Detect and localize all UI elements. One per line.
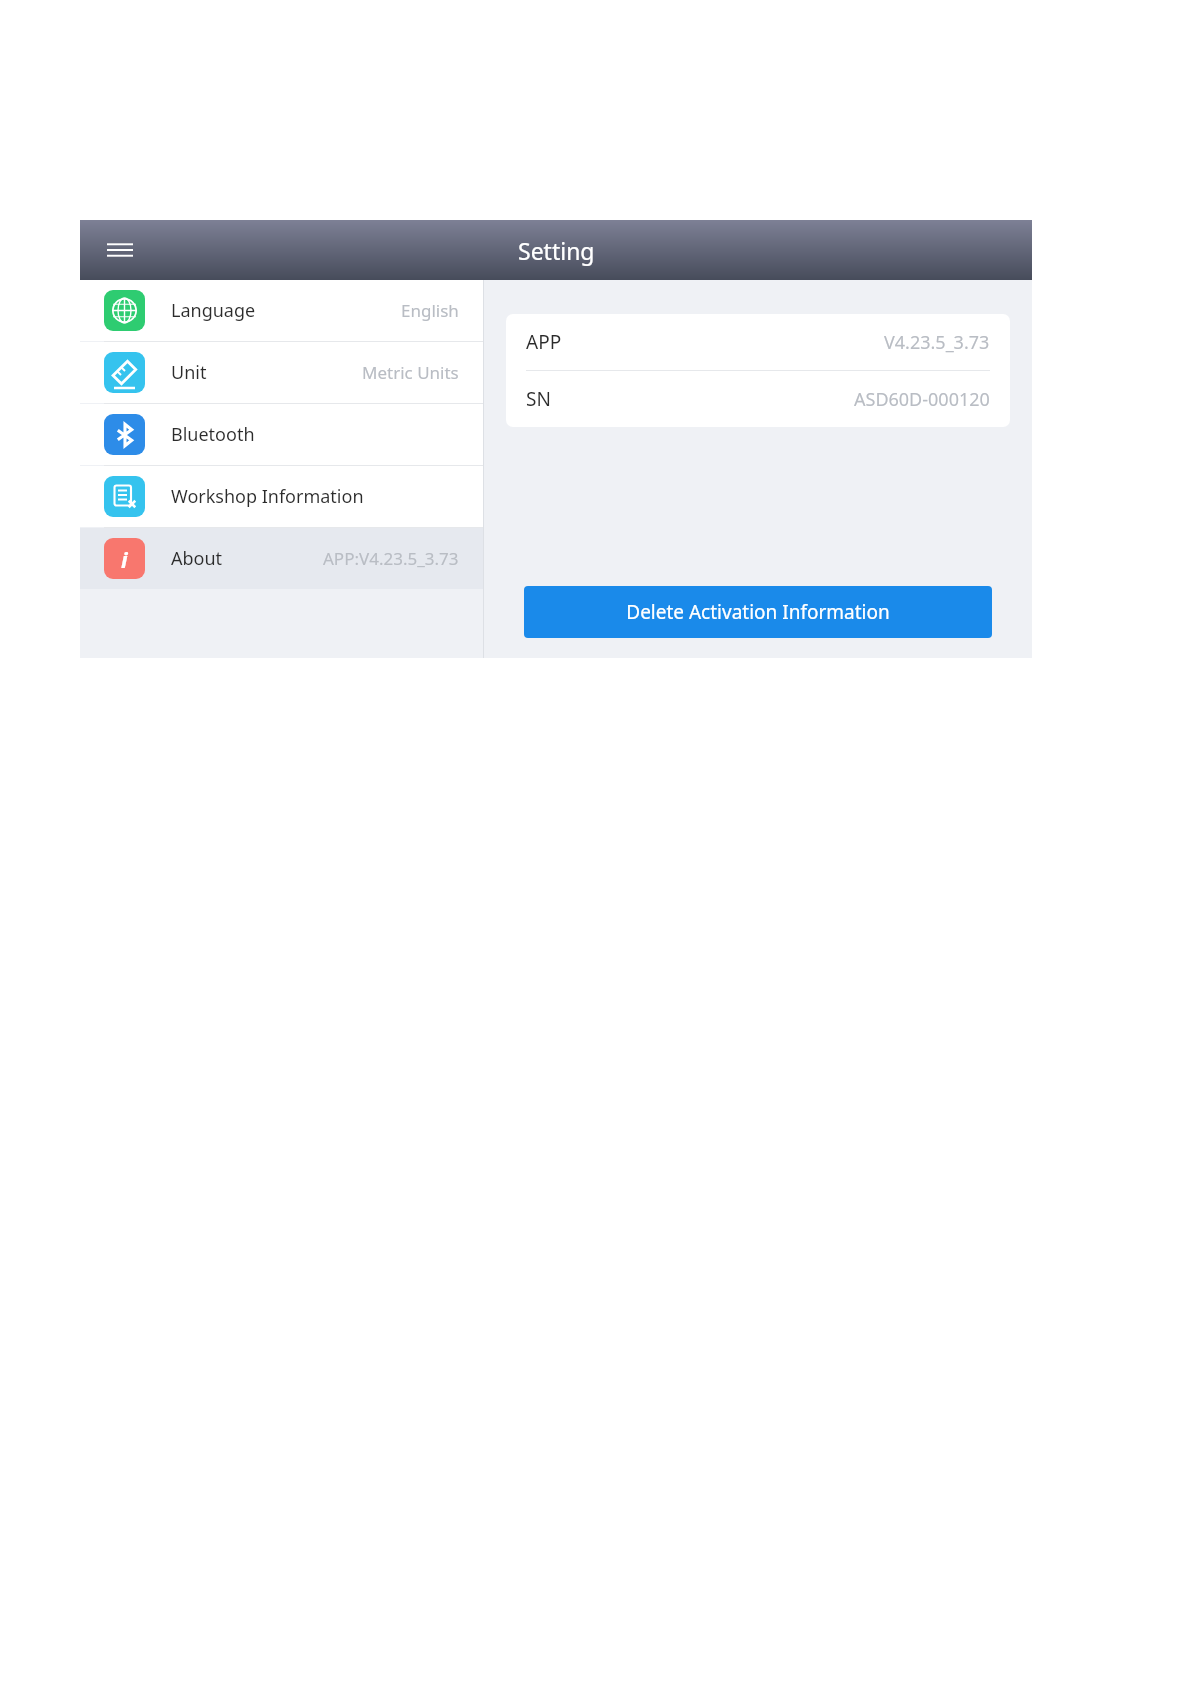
staticText: APP bbox=[526, 329, 562, 355]
button[interactable]: Language bbox=[80, 280, 483, 341]
staticText: Delete Activation Information bbox=[626, 599, 890, 625]
staticText: About bbox=[171, 546, 223, 571]
button[interactable]: SN bbox=[506, 371, 1010, 427]
staticText: ASD60D-000120 bbox=[854, 387, 990, 412]
button[interactable]: Menu bbox=[98, 228, 142, 272]
button[interactable]: Bluetooth bbox=[80, 404, 483, 465]
staticText: SN bbox=[526, 386, 551, 412]
button[interactable]: APP bbox=[506, 314, 1010, 370]
staticText: V4.23.5_3.73 bbox=[884, 330, 990, 355]
button[interactable]: Delete Activation Information bbox=[524, 586, 992, 638]
staticText: Unit bbox=[171, 360, 207, 385]
staticText: Workshop Information bbox=[171, 484, 364, 509]
staticText: Setting bbox=[518, 235, 595, 266]
staticText: English bbox=[401, 299, 459, 322]
staticText: Bluetooth bbox=[171, 422, 255, 447]
button[interactable]: Unit bbox=[80, 342, 483, 403]
staticText: i bbox=[121, 544, 128, 574]
button[interactable]: Workshop Information bbox=[80, 466, 483, 527]
button[interactable]: i bbox=[80, 528, 483, 589]
staticText: APP:V4.23.5_3.73 bbox=[323, 547, 459, 570]
staticText: Language bbox=[171, 298, 256, 323]
staticText: Metric Units bbox=[362, 361, 459, 384]
